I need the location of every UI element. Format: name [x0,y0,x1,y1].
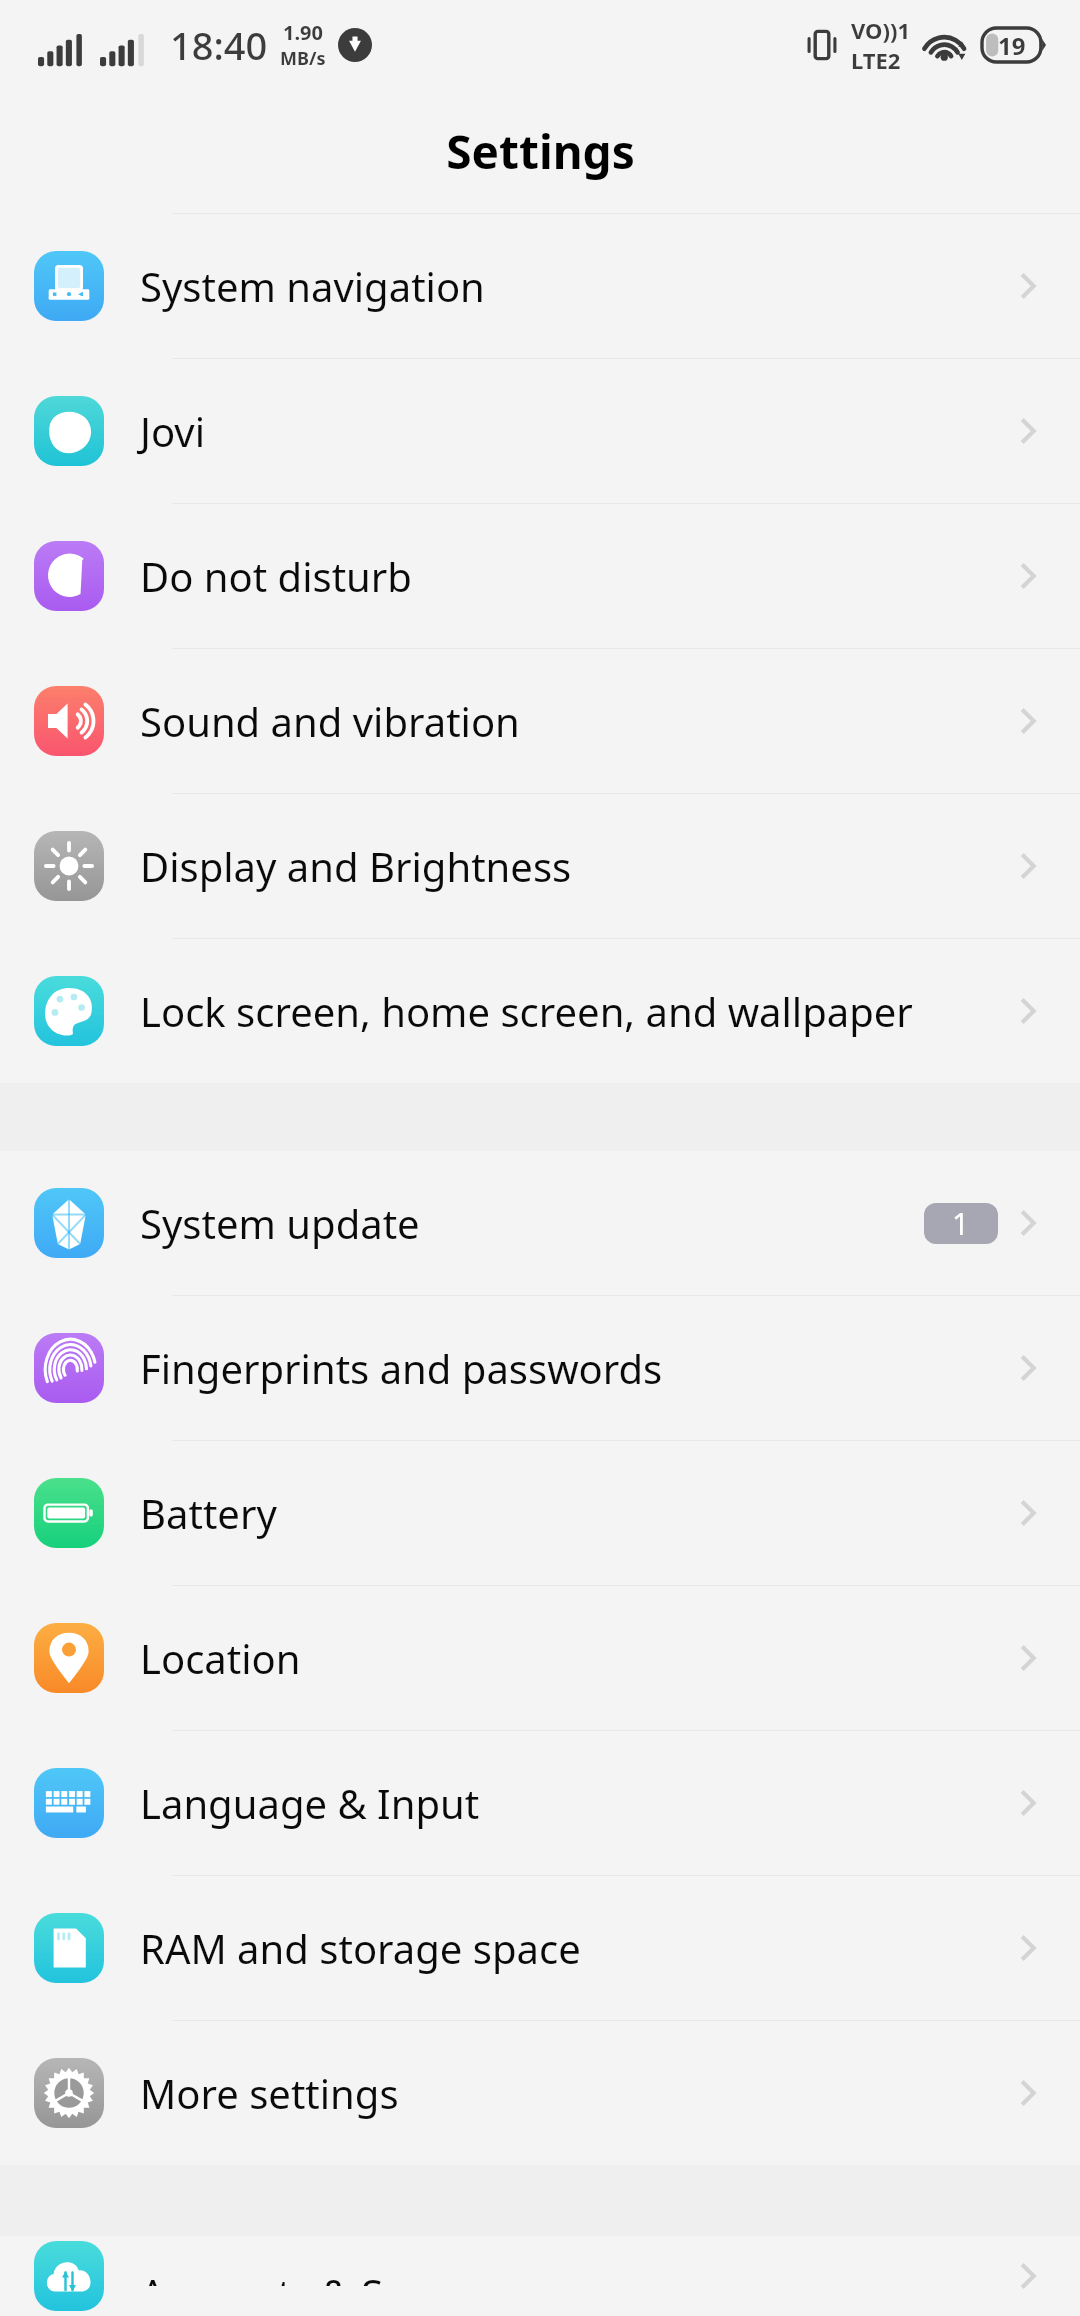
staticText: Fingerprints and passwords [140,1341,1010,1395]
staticText: MB/s [280,46,326,71]
staticText: Sound and vibration [140,694,1010,748]
button[interactable]: Jovi [0,358,1080,503]
button[interactable]: RAM and storage space [0,1875,1080,2020]
staticText: Lock screen, home screen, and wallpaper [140,984,1010,1038]
button[interactable]: Accounts & Sync [0,2236,1080,2316]
button[interactable]: Battery [0,1440,1080,1585]
staticText: Battery [140,1486,1010,1540]
staticText: System update [140,1196,924,1250]
button[interactable]: Lock screen, home screen, and wallpaper [0,938,1080,1083]
button[interactable]: More settings [0,2020,1080,2165]
staticText: 1 [952,1203,970,1244]
button[interactable]: Sound and vibration [0,648,1080,793]
button[interactable]: Display and Brightness [0,793,1080,938]
button[interactable]: Do not disturb [0,503,1080,648]
staticText: Jovi [140,404,1010,458]
staticText: Do not disturb [140,549,1010,603]
staticText: More settings [140,2066,1010,2120]
button[interactable]: System update [0,1151,1080,1295]
staticText: Location [140,1631,1010,1685]
staticText: Language & Input [140,1776,1010,1830]
staticText: 19 [998,29,1026,62]
button[interactable]: Location [0,1585,1080,1730]
staticText: 1.90 [283,19,323,46]
staticText: System navigation [140,259,1010,313]
staticText: LTE2 [851,45,901,75]
staticText: 18:40 [170,19,268,71]
staticText: RAM and storage space [140,1921,1010,1975]
button[interactable]: System navigation [0,213,1080,358]
button[interactable]: Fingerprints and passwords [0,1295,1080,1440]
button[interactable]: Language & Input [0,1730,1080,1875]
staticText: Accounts & Sync [140,2266,1010,2286]
staticText: VO))1 [851,15,910,45]
staticText: Settings [446,120,635,183]
staticText: Display and Brightness [140,839,1010,893]
